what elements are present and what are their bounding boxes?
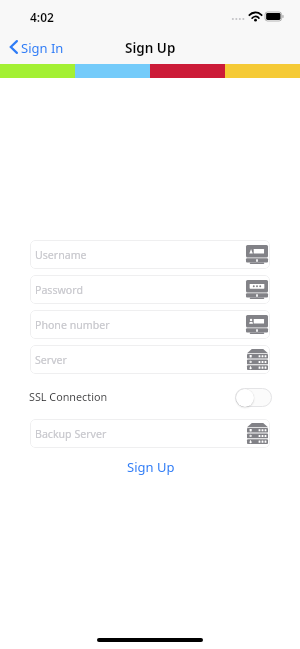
button[interactable]: Username	[30, 240, 270, 269]
staticText: Sign Up	[127, 458, 175, 476]
button[interactable]: Sign Up	[118, 456, 182, 478]
staticText: Phone number	[35, 318, 110, 332]
button[interactable]: Phone number	[30, 310, 270, 339]
staticText: Sign In	[21, 39, 64, 57]
button[interactable]: Backup Server	[30, 419, 270, 448]
staticText: 4:02	[30, 9, 54, 25]
button[interactable]: Password	[30, 275, 270, 304]
staticText: Server	[35, 353, 67, 367]
staticText: Sign Up	[125, 39, 176, 57]
staticText: Backup Server	[35, 427, 107, 441]
staticText: SSL Connection	[29, 389, 108, 404]
button[interactable]: Server	[30, 345, 270, 374]
button[interactable]: Sign In	[0, 32, 72, 62]
button[interactable]	[235, 388, 272, 407]
staticText: Username	[35, 248, 87, 262]
staticText: Password	[35, 283, 83, 297]
button[interactable]: SSL Connection	[30, 380, 270, 413]
